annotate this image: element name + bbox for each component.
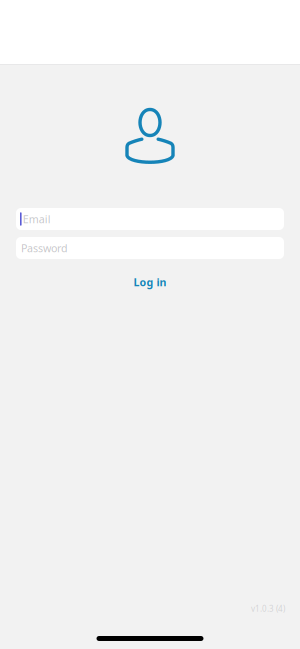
staticText: Email — [23, 212, 51, 226]
staticText: v1.0.3 (4) — [251, 603, 285, 614]
button[interactable]: Log in — [0, 275, 300, 289]
staticText: Log in — [133, 275, 166, 289]
staticText: Password — [21, 241, 68, 255]
